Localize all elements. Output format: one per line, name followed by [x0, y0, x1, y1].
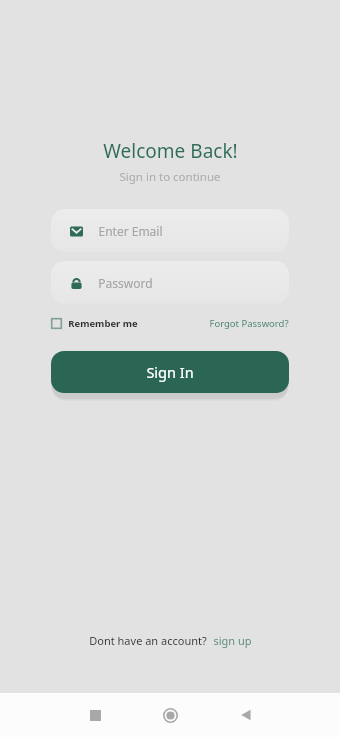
button[interactable]: Enter Email — [51, 209, 289, 252]
button[interactable]: Back — [208, 693, 283, 737]
staticText: Sign in to continue — [119, 169, 221, 185]
button[interactable]: Recent apps — [58, 693, 133, 737]
staticText: Welcome Back! — [103, 138, 238, 164]
button[interactable]: Password — [51, 261, 289, 304]
staticText: Remember me — [68, 317, 138, 330]
staticText: Enter Email — [98, 223, 163, 239]
staticText: Password — [98, 275, 153, 291]
staticText: sign up — [213, 633, 252, 648]
button[interactable]: Home — [133, 693, 208, 737]
button[interactable]: Forgot Password? — [209, 317, 289, 330]
staticText: Forgot Password? — [209, 317, 289, 330]
button[interactable]: Sign In — [51, 351, 289, 393]
staticText: Sign In — [146, 362, 194, 382]
button[interactable]: Remember me — [51, 317, 138, 330]
staticText: Dont have an account? — [89, 633, 207, 648]
button[interactable]: sign up — [213, 633, 252, 648]
